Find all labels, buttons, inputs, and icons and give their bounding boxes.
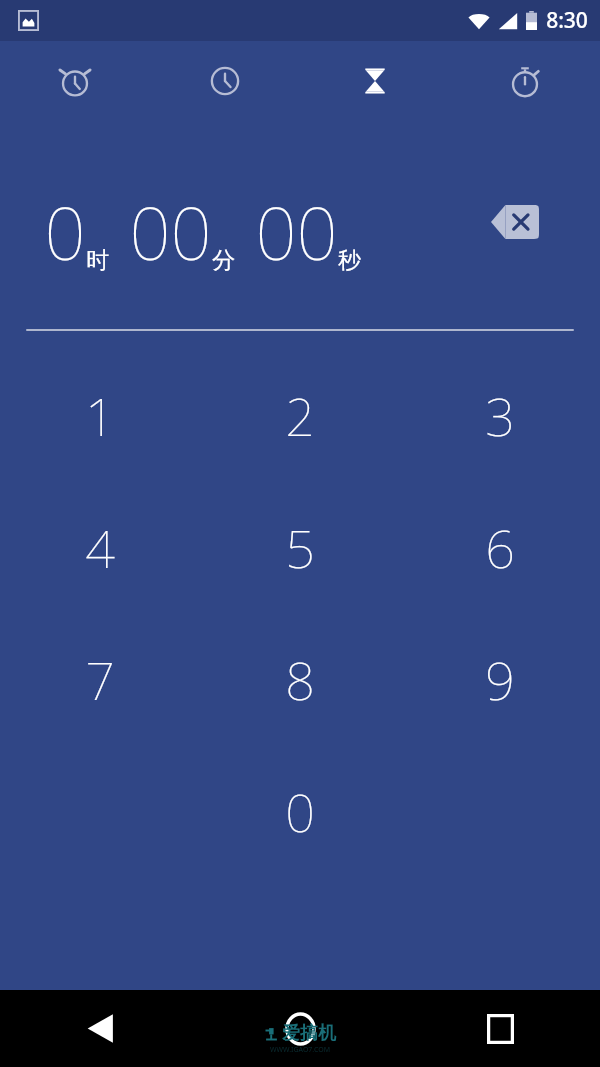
- button[interactable]: 3: [400, 349, 600, 481]
- staticText: 1: [85, 380, 115, 451]
- button[interactable]: Timer: [300, 41, 450, 123]
- staticText: 4: [85, 512, 115, 583]
- button[interactable]: 7: [0, 613, 200, 745]
- staticText: 3: [485, 380, 515, 451]
- staticText: 8: [285, 644, 315, 715]
- button[interactable]: 8: [200, 613, 400, 745]
- staticText: 0: [285, 776, 315, 847]
- button[interactable]: 9: [400, 613, 600, 745]
- button[interactable]: Back: [0, 990, 200, 1067]
- button[interactable]: Stopwatch: [450, 41, 600, 123]
- button[interactable]: Clock: [150, 41, 300, 123]
- button[interactable]: Backspace: [488, 203, 542, 241]
- staticText: 9: [485, 644, 515, 715]
- button[interactable]: Recent apps: [400, 990, 600, 1067]
- button[interactable]: 5: [200, 481, 400, 613]
- button[interactable]: Home: [200, 990, 400, 1067]
- staticText: 爱搞机: [282, 1022, 336, 1045]
- staticText: 时: [86, 246, 109, 275]
- button[interactable]: 6: [400, 481, 600, 613]
- staticText: 00: [129, 183, 212, 281]
- button[interactable]: 4: [0, 481, 200, 613]
- staticText: 00: [255, 183, 338, 281]
- staticText: 5: [285, 512, 315, 583]
- staticText: 7: [85, 644, 115, 715]
- staticText: 6: [485, 512, 515, 583]
- staticText: 2: [285, 380, 315, 451]
- button[interactable]: 0: [200, 745, 400, 877]
- button[interactable]: Alarm: [0, 41, 150, 123]
- staticText: 秒: [338, 246, 361, 275]
- button[interactable]: 1: [0, 349, 200, 481]
- button[interactable]: 2: [200, 349, 400, 481]
- staticText: 0: [44, 183, 86, 281]
- staticText: 8:30: [546, 6, 588, 35]
- staticText: 分: [212, 246, 235, 275]
- staticText: WWW.IGAO7.COM: [270, 1045, 330, 1055]
